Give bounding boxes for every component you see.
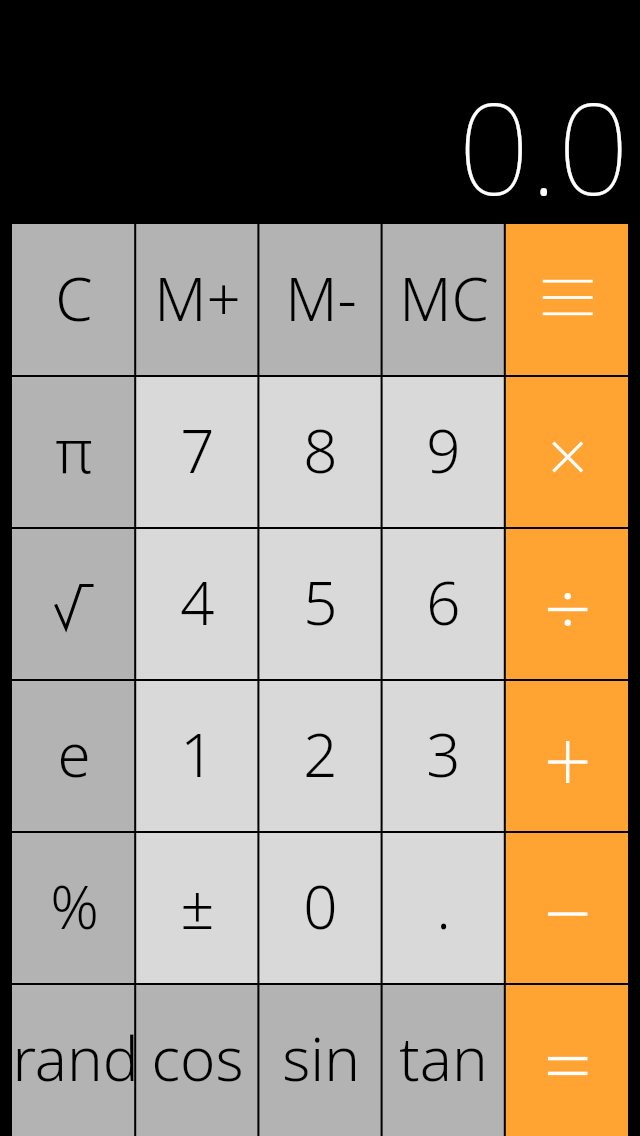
button[interactable]: rand: [12, 984, 136, 1136]
staticText: 7: [180, 409, 215, 491]
button[interactable]: cos: [136, 984, 259, 1136]
button[interactable]: Equals: [505, 984, 628, 1136]
button[interactable]: 6: [382, 528, 505, 680]
button[interactable]: tan: [382, 984, 505, 1136]
staticText: MC: [399, 257, 489, 339]
button[interactable]: sin: [259, 984, 382, 1136]
button[interactable]: Multiply: [505, 376, 628, 528]
staticText: cos: [151, 1017, 244, 1099]
staticText: e: [57, 713, 91, 795]
staticText: π: [55, 409, 93, 491]
staticText: sin: [282, 1017, 360, 1099]
button[interactable]: Minus: [505, 832, 628, 984]
staticText: tan: [399, 1017, 488, 1099]
button[interactable]: Square root: [12, 528, 136, 680]
button[interactable]: e: [12, 680, 136, 832]
staticText: %: [50, 865, 99, 947]
button[interactable]: 2: [259, 680, 382, 832]
staticText: 0: [303, 865, 338, 947]
button[interactable]: ±: [136, 832, 259, 984]
button[interactable]: 0: [259, 832, 382, 984]
button[interactable]: M+: [136, 224, 259, 376]
staticText: ±: [180, 865, 215, 947]
staticText: 3: [426, 713, 461, 795]
button[interactable]: 3: [382, 680, 505, 832]
button[interactable]: 4: [136, 528, 259, 680]
button[interactable]: 8: [259, 376, 382, 528]
button[interactable]: C: [12, 224, 136, 376]
staticText: 0.0: [458, 60, 630, 232]
button[interactable]: Divide: [505, 528, 628, 680]
button[interactable]: .: [382, 832, 505, 984]
button[interactable]: 5: [259, 528, 382, 680]
button[interactable]: %: [12, 832, 136, 984]
button[interactable]: Menu: [505, 224, 628, 376]
staticText: M-: [285, 257, 357, 339]
staticText: 5: [303, 561, 338, 643]
staticText: 4: [180, 561, 215, 643]
button[interactable]: 7: [136, 376, 259, 528]
staticText: 9: [426, 409, 461, 491]
staticText: C: [55, 257, 93, 339]
button[interactable]: 0.0: [0, 0, 640, 224]
button[interactable]: π: [12, 376, 136, 528]
staticText: 1: [180, 713, 215, 795]
button[interactable]: 1: [136, 680, 259, 832]
staticText: .: [436, 865, 451, 947]
staticText: 2: [303, 713, 338, 795]
staticText: 6: [426, 561, 461, 643]
button[interactable]: Plus: [505, 680, 628, 832]
staticText: M+: [154, 257, 241, 339]
button[interactable]: MC: [382, 224, 505, 376]
staticText: rand: [12, 1017, 136, 1099]
button[interactable]: M-: [259, 224, 382, 376]
staticText: 8: [303, 409, 338, 491]
button[interactable]: 9: [382, 376, 505, 528]
